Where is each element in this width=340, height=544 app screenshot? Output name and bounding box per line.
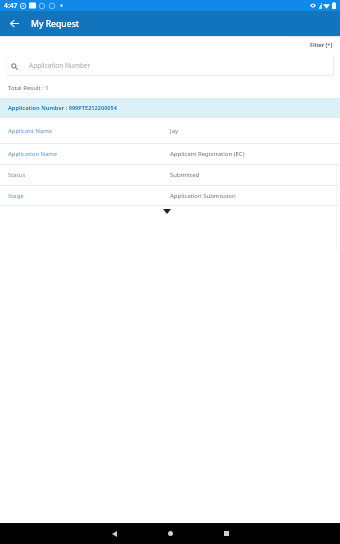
button[interactable]: Application Name — [0, 144, 340, 164]
staticText: Filter [+] — [310, 41, 333, 48]
button[interactable]: Application Number : 999PTE212200054 — [0, 98, 340, 118]
button[interactable]: Home — [163, 523, 177, 544]
staticText: Stage — [8, 192, 24, 200]
staticText: 4:47 — [4, 1, 18, 10]
staticText: Status — [8, 171, 26, 179]
staticText: Application Name — [8, 150, 58, 158]
button[interactable]: Stage — [0, 186, 340, 205]
staticText: Total Result : 1 — [8, 84, 49, 92]
staticText: Applicant Registration (EC) — [170, 150, 245, 158]
staticText: Application Number : 999PTE212200054 — [8, 104, 117, 112]
staticText: Submitted — [170, 171, 200, 179]
button[interactable]: Applicant Name — [0, 118, 340, 143]
button[interactable]: Status — [0, 165, 340, 185]
staticText: Application Number — [29, 61, 91, 70]
button[interactable]: Expand — [0, 206, 340, 217]
button[interactable]: Application Number — [7, 55, 333, 75]
staticText: Jay — [170, 127, 179, 135]
staticText: Application Submission — [170, 192, 236, 200]
staticText: Applicant Name — [8, 127, 53, 135]
button[interactable]: Back — [0, 11, 28, 36]
button[interactable]: Back — [65, 523, 163, 544]
button[interactable]: Filter [+] — [303, 37, 340, 52]
staticText: My Request — [31, 18, 80, 30]
button[interactable]: Recents — [177, 523, 275, 544]
